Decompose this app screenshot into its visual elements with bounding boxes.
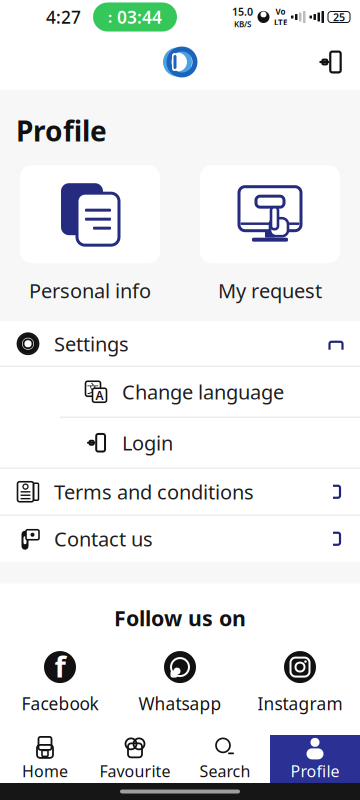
button[interactable]: f	[0, 650, 120, 715]
staticText: Follow us on	[114, 604, 246, 632]
staticText: Facebook	[21, 692, 98, 715]
staticText: Whatsapp	[138, 692, 221, 715]
staticText: f	[54, 647, 65, 686]
staticText: Change language	[122, 378, 284, 405]
button[interactable]: Settings	[0, 322, 360, 366]
staticText: Instagram	[257, 692, 342, 715]
staticText: Contact us	[54, 525, 153, 552]
button[interactable]: Favourite	[90, 735, 180, 783]
staticText: Settings	[54, 330, 129, 357]
button[interactable]: Whatsapp	[120, 650, 240, 715]
staticText: 03:44	[117, 5, 162, 28]
staticText: Search	[199, 760, 250, 782]
button[interactable]: My request	[180, 165, 360, 304]
button[interactable]: Search	[180, 735, 270, 783]
button[interactable]: Contact us	[0, 516, 360, 562]
staticText: Login	[122, 429, 173, 456]
staticText: KB/S	[234, 19, 251, 29]
staticText: Personal info	[29, 277, 151, 304]
button[interactable]: 文	[0, 367, 360, 417]
button[interactable]: Login	[0, 418, 360, 468]
staticText: :	[108, 7, 112, 27]
staticText: Profile	[16, 112, 107, 149]
button[interactable]: Profile	[270, 735, 360, 783]
button[interactable]: Terms and conditions	[0, 469, 360, 515]
button[interactable]: Home	[0, 735, 90, 783]
staticText: Profile	[290, 760, 339, 782]
staticText: 文	[87, 381, 99, 396]
staticText: LTE	[274, 17, 287, 28]
staticText: Vo	[275, 6, 285, 17]
staticText: 4:27	[46, 5, 81, 28]
button[interactable]: Log out	[308, 40, 352, 84]
staticText: Favourite	[99, 760, 170, 782]
staticText: Home	[22, 760, 68, 782]
staticText: 15.0	[232, 5, 253, 19]
staticText: A	[95, 387, 103, 403]
staticText: Terms and conditions	[54, 478, 254, 505]
staticText: 25	[333, 10, 345, 24]
staticText: My request	[218, 277, 322, 304]
button[interactable]: Personal info	[0, 165, 180, 304]
button[interactable]: Instagram	[240, 650, 360, 715]
